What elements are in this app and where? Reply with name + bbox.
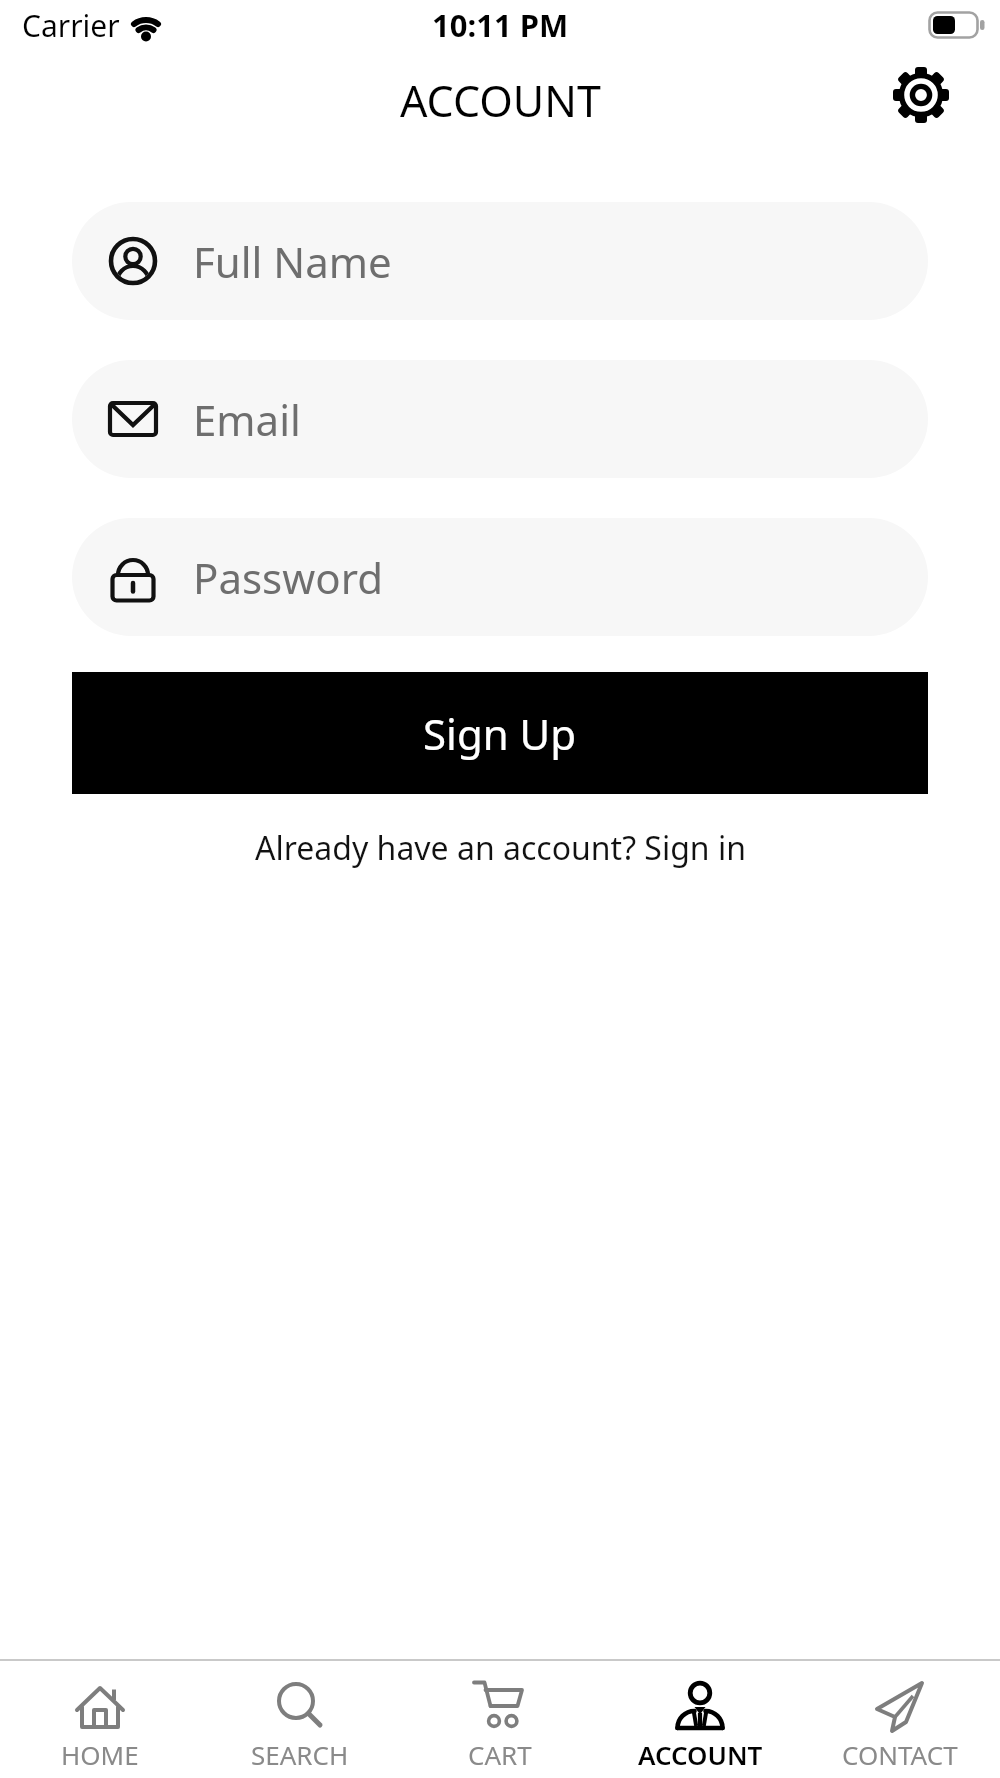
staticText: ACCOUNT bbox=[400, 71, 601, 130]
staticText: SEARCH bbox=[251, 1737, 349, 1772]
staticText: HOME bbox=[61, 1737, 139, 1772]
staticText: Password bbox=[193, 549, 383, 606]
button[interactable]: ACCOUNT bbox=[600, 1661, 800, 1778]
button[interactable]: HOME bbox=[0, 1661, 200, 1778]
button[interactable]: Full Name bbox=[72, 202, 928, 320]
staticText: Already have an account? Sign in bbox=[255, 826, 746, 870]
button[interactable]: SEARCH bbox=[200, 1661, 400, 1778]
button[interactable]: Email bbox=[72, 360, 928, 478]
button[interactable]: CONTACT bbox=[800, 1661, 1000, 1778]
button[interactable] bbox=[892, 66, 950, 124]
staticText: 10:11 PM bbox=[432, 4, 569, 46]
staticText: CART bbox=[468, 1737, 532, 1772]
staticText: Email bbox=[193, 391, 301, 448]
button[interactable]: Already have an account? Sign in bbox=[0, 826, 1000, 870]
staticText: Carrier bbox=[22, 5, 120, 46]
staticText: Sign Up bbox=[423, 705, 577, 762]
staticText: Full Name bbox=[193, 233, 392, 290]
button[interactable]: Sign Up bbox=[72, 672, 928, 794]
button[interactable]: Password bbox=[72, 518, 928, 636]
staticText: ACCOUNT bbox=[638, 1737, 763, 1772]
staticText: CONTACT bbox=[842, 1737, 958, 1772]
button[interactable]: CART bbox=[400, 1661, 600, 1778]
